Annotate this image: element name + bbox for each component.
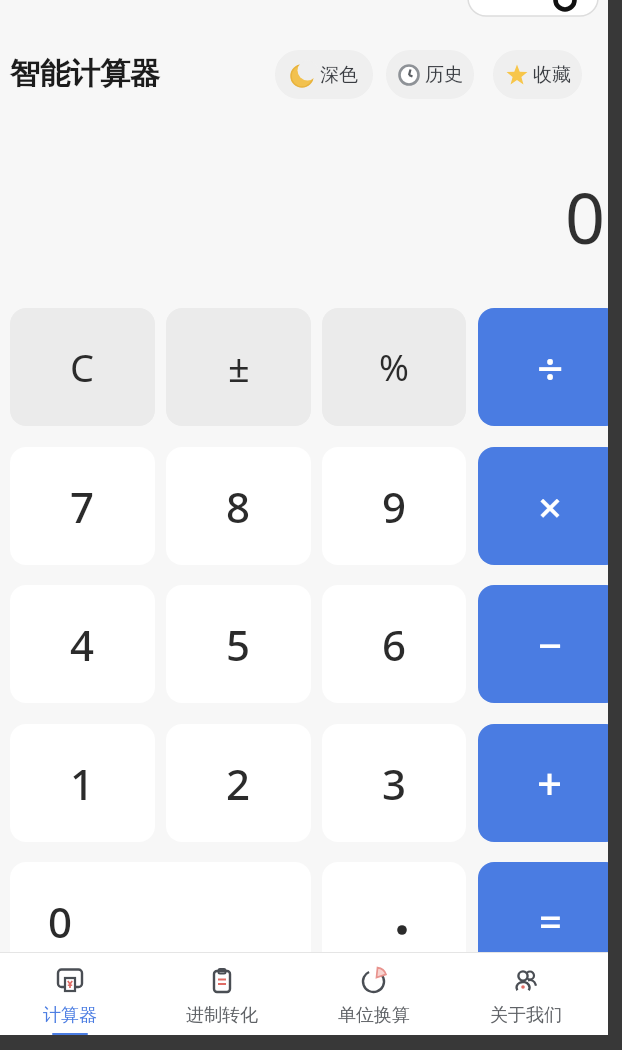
staticText: × [538, 478, 563, 535]
button[interactable]: C [10, 308, 155, 426]
button[interactable]: 单位换算 [298, 952, 450, 1027]
staticText: = [539, 894, 562, 948]
button[interactable]: 进制转化 [146, 952, 298, 1027]
staticText: % [379, 343, 409, 392]
button[interactable]: + [478, 724, 622, 842]
button[interactable]: 9 [322, 447, 466, 565]
staticText: 8 [226, 478, 251, 535]
button[interactable] [322, 862, 466, 980]
button[interactable]: 5 [166, 585, 311, 703]
staticText: 历史 [425, 63, 463, 87]
button[interactable]: ÷ [478, 308, 622, 426]
button[interactable]: 0 [10, 862, 311, 980]
button[interactable]: 7 [10, 447, 155, 565]
staticText: 0 [565, 169, 606, 264]
button[interactable]: ± [166, 308, 311, 426]
button[interactable]: 6 [322, 585, 466, 703]
staticText: ÷ [537, 336, 564, 399]
staticText: 7 [70, 478, 95, 535]
button[interactable]: 收藏 [493, 50, 582, 99]
button[interactable]: 3 [322, 724, 466, 842]
button[interactable]: 关于我们 [450, 952, 602, 1027]
staticText: 进制转化 [186, 1004, 258, 1027]
staticText: 计算器 [43, 1004, 97, 1027]
button[interactable]: = [478, 862, 622, 980]
staticText: C [70, 341, 95, 393]
staticText: 智能计算器 [10, 55, 160, 93]
button[interactable]: % [322, 308, 466, 426]
button[interactable]: 4 [10, 585, 155, 703]
button[interactable]: − [478, 585, 622, 703]
staticText: 5 [226, 616, 251, 673]
staticText: ± [228, 341, 250, 393]
staticText: + [537, 753, 563, 813]
staticText: 9 [382, 478, 407, 535]
staticText: 单位换算 [338, 1004, 410, 1027]
staticText: 4 [70, 616, 95, 673]
staticText: 0 [48, 893, 73, 950]
staticText: 3 [382, 755, 407, 812]
button[interactable]: × [478, 447, 622, 565]
staticText: 1 [70, 755, 95, 812]
button[interactable]: 2 [166, 724, 311, 842]
staticText: 收藏 [533, 63, 571, 87]
button[interactable]: 计算器 [0, 952, 146, 1035]
button[interactable]: 历史 [386, 50, 474, 99]
staticText: 6 [382, 616, 407, 673]
staticText: 深色 [320, 63, 358, 87]
staticText: 2 [226, 755, 251, 812]
button[interactable]: 1 [10, 724, 155, 842]
staticText: 关于我们 [490, 1004, 562, 1027]
button[interactable]: 8 [166, 447, 311, 565]
button[interactable]: 深色 [275, 50, 373, 99]
staticText: − [538, 616, 563, 673]
